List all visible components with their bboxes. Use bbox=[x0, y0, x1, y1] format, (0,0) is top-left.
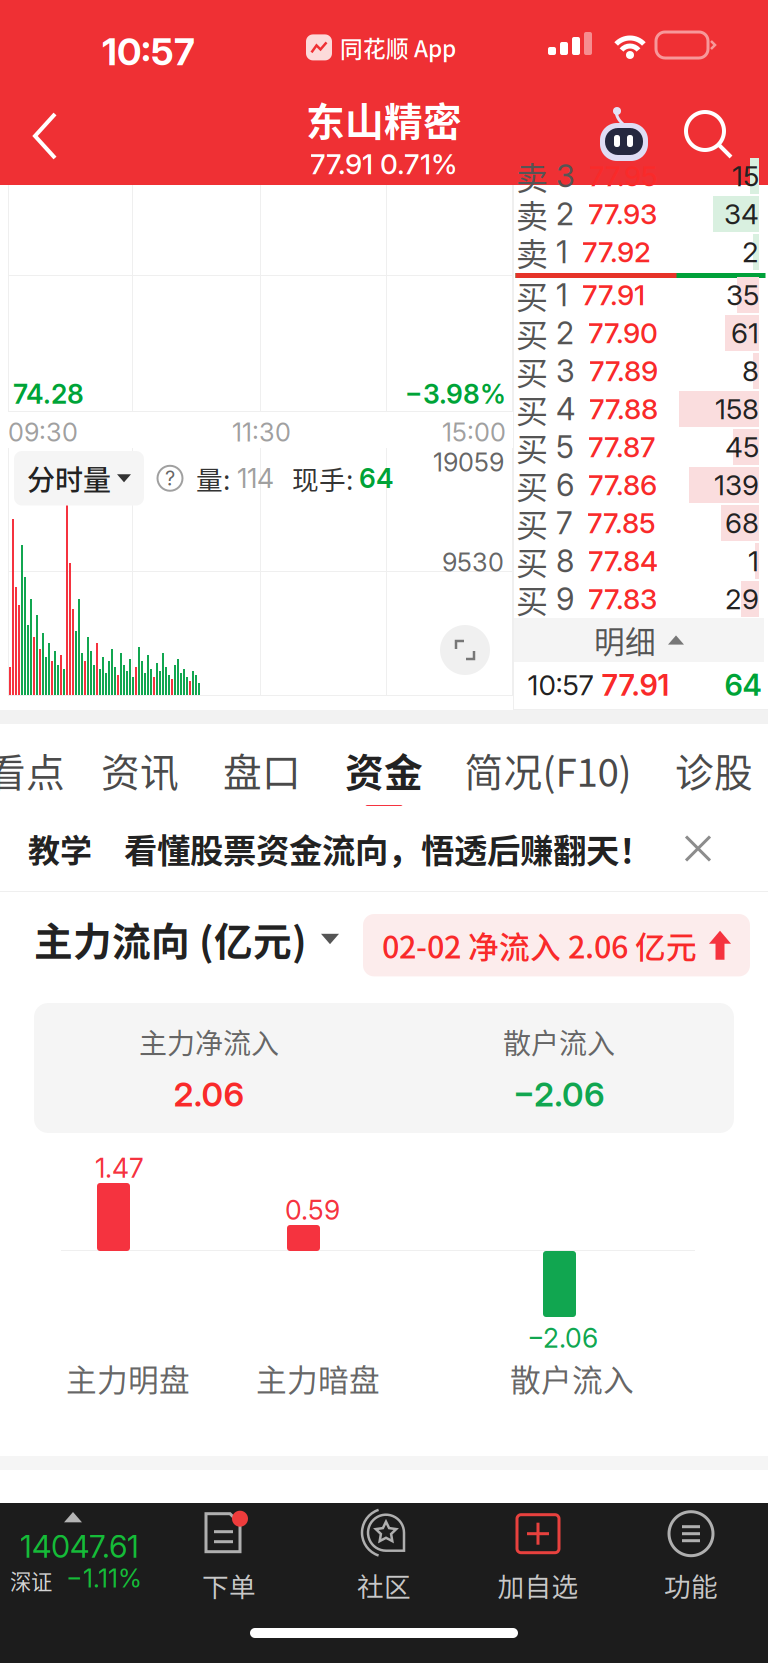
staticText: 买 bbox=[516, 424, 548, 470]
staticText: 77.91 0.71% bbox=[310, 147, 458, 181]
staticText: 9530 bbox=[442, 547, 504, 578]
button[interactable]: Full screen bbox=[440, 625, 490, 675]
button[interactable]: 简况(F10) bbox=[453, 738, 643, 814]
staticText: 64 bbox=[724, 667, 761, 703]
staticText: 量: bbox=[196, 459, 230, 498]
staticText: 3 bbox=[548, 157, 575, 194]
button[interactable]: 加自选 bbox=[463, 1503, 613, 1611]
staticText: 35 bbox=[726, 278, 759, 312]
staticText: 77.85 bbox=[587, 506, 656, 540]
staticText: 77.91 bbox=[582, 278, 645, 312]
staticText: 1 bbox=[548, 233, 568, 270]
staticText: 1 bbox=[748, 544, 759, 578]
button[interactable]: Back bbox=[0, 90, 92, 182]
staticText: 3 bbox=[548, 352, 575, 389]
staticText: −2.06 bbox=[527, 1322, 598, 1354]
staticText: 卖 bbox=[516, 229, 548, 275]
staticText: 8 bbox=[548, 542, 574, 579]
staticText: 深证 bbox=[10, 1565, 52, 1596]
button[interactable]: 明细 bbox=[513, 618, 768, 662]
staticText: 77.95 bbox=[589, 159, 658, 193]
staticText: 8 bbox=[742, 354, 759, 388]
button[interactable]: 教学 bbox=[0, 806, 768, 891]
staticText: 资讯 bbox=[101, 742, 179, 798]
staticText: 现手: bbox=[274, 459, 353, 498]
staticText: 卖 bbox=[516, 153, 548, 199]
staticText: 加自选 bbox=[497, 1566, 578, 1604]
button[interactable]: 盘口 bbox=[167, 738, 357, 814]
staticText: 77.84 bbox=[588, 544, 658, 578]
staticText: 02-02 净流入 2.06 亿元 bbox=[382, 923, 697, 967]
staticText: 6 bbox=[548, 466, 574, 503]
staticText: 7 bbox=[548, 504, 573, 541]
staticText: 77.83 bbox=[588, 582, 657, 616]
staticText: ? bbox=[165, 466, 175, 490]
staticText: 看懂股票资金流向，悟透后赚翻天！ bbox=[124, 824, 652, 873]
staticText: 139 bbox=[714, 468, 759, 502]
staticText: 158 bbox=[715, 392, 759, 426]
button[interactable]: 02-02 净流入 2.06 亿元 bbox=[363, 914, 750, 976]
staticText: 看点 bbox=[0, 742, 65, 798]
staticText: 买 bbox=[516, 500, 548, 546]
button[interactable]: 社区 bbox=[309, 1503, 459, 1611]
staticText: 15 bbox=[732, 159, 759, 193]
button[interactable]: 资金 bbox=[289, 738, 479, 814]
staticText: −1.11% bbox=[66, 1563, 142, 1594]
staticText: 社区 bbox=[357, 1566, 411, 1604]
staticText: 买 bbox=[516, 462, 548, 508]
staticText: 下单 bbox=[202, 1566, 256, 1604]
staticText: 功能 bbox=[664, 1566, 718, 1604]
staticText: 同花顺 App bbox=[340, 31, 456, 64]
button[interactable]: Search bbox=[668, 90, 752, 182]
staticText: 买 bbox=[516, 576, 548, 622]
staticText: 5 bbox=[548, 428, 574, 465]
staticText: 61 bbox=[731, 316, 759, 350]
staticText: 主力明盘 bbox=[66, 1356, 190, 1400]
staticText: 教学 bbox=[28, 825, 92, 872]
staticText: 主力净流入 bbox=[139, 1022, 279, 1062]
staticText: 45 bbox=[725, 430, 759, 464]
button[interactable]: Help bbox=[144, 457, 196, 499]
staticText: 77.93 bbox=[588, 197, 657, 231]
staticText: 2.06 bbox=[173, 1074, 244, 1114]
staticText: 买 bbox=[516, 386, 548, 432]
button[interactable]: 下单 bbox=[154, 1503, 304, 1611]
staticText: 散户流入 bbox=[503, 1022, 615, 1062]
staticText: 分时量 bbox=[27, 458, 111, 498]
staticText: 64 bbox=[353, 462, 394, 494]
staticText: −2.06 bbox=[513, 1074, 605, 1114]
staticText: 77.91 bbox=[601, 667, 669, 703]
staticText: 10:57 bbox=[527, 668, 593, 702]
staticText: 资金 bbox=[345, 742, 423, 798]
staticText: 15:00 bbox=[442, 417, 506, 448]
staticText: 主力暗盘 bbox=[256, 1356, 380, 1400]
staticText: 1 bbox=[548, 276, 568, 313]
staticText: 东山精密 bbox=[306, 91, 462, 147]
staticText: 11:30 bbox=[232, 417, 291, 448]
button[interactable]: 主力流向 (亿元) bbox=[34, 909, 339, 969]
button[interactable]: 分时量 bbox=[14, 451, 144, 505]
staticText: 卖 bbox=[516, 191, 548, 237]
staticText: 19059 bbox=[433, 447, 504, 478]
button[interactable]: 资讯 bbox=[45, 738, 235, 814]
staticText: 明细 bbox=[594, 618, 656, 662]
staticText: 77.87 bbox=[588, 430, 656, 464]
staticText: 0.59 bbox=[285, 1194, 340, 1226]
staticText: 盘口 bbox=[223, 742, 301, 798]
staticText: −3.98% bbox=[405, 378, 506, 410]
staticText: 散户流入 bbox=[510, 1356, 634, 1400]
staticText: 77.90 bbox=[588, 316, 658, 350]
button[interactable]: AI assistant bbox=[584, 90, 664, 182]
staticText: 买 bbox=[516, 272, 548, 318]
button[interactable]: 看点 bbox=[0, 738, 121, 814]
staticText: 诊股 bbox=[675, 742, 753, 798]
staticText: 68 bbox=[725, 506, 759, 540]
staticText: 简况(F10) bbox=[464, 742, 631, 798]
button[interactable]: 功能 bbox=[616, 1503, 766, 1611]
staticText: 34 bbox=[724, 197, 759, 231]
staticText: 4 bbox=[548, 390, 575, 427]
staticText: 14047.61 bbox=[20, 1528, 139, 1565]
staticText: 114 bbox=[230, 462, 274, 494]
button[interactable]: 诊股 bbox=[619, 738, 768, 814]
staticText: 2 bbox=[548, 314, 574, 351]
